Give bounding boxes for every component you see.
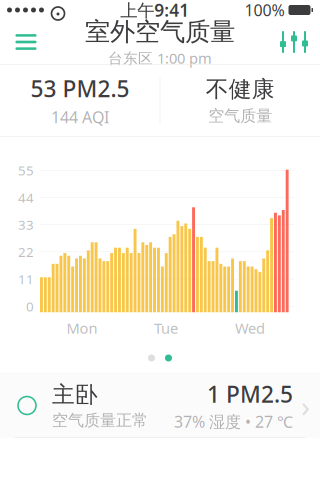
staticText: 33 [18, 216, 34, 233]
staticText: Tue [154, 318, 178, 338]
staticText: 空气质量 [208, 106, 272, 126]
staticText: 台东区 1:00 pm [108, 48, 212, 68]
staticText: Mon [66, 318, 97, 338]
staticText: 不健康 [206, 75, 275, 103]
staticText: 144 AQI [51, 106, 109, 128]
staticText: 室外空气质量 [85, 16, 235, 47]
staticText: 空气质量正常 [52, 411, 148, 430]
staticText: 主卧 [52, 381, 98, 409]
staticText: 1 PM2.5 [207, 379, 293, 409]
staticText: 55 [18, 161, 34, 179]
staticText: › [301, 386, 310, 425]
staticText: 100% [244, 0, 284, 21]
button[interactable]: 筛选 [272, 20, 316, 64]
button[interactable]: 菜单 [4, 20, 48, 64]
staticText: 53 PM2.5 [30, 73, 129, 103]
staticText: Wed [235, 318, 265, 338]
staticText: 0 [26, 297, 34, 315]
staticText: 22 [18, 243, 34, 261]
button[interactable]: 主卧 [0, 373, 320, 438]
staticText: 44 [18, 189, 34, 206]
staticText: 上午9:41 [120, 0, 189, 21]
staticText: 37% 湿度 • 27 ℃ [174, 411, 293, 432]
staticText: 11 [18, 270, 34, 288]
